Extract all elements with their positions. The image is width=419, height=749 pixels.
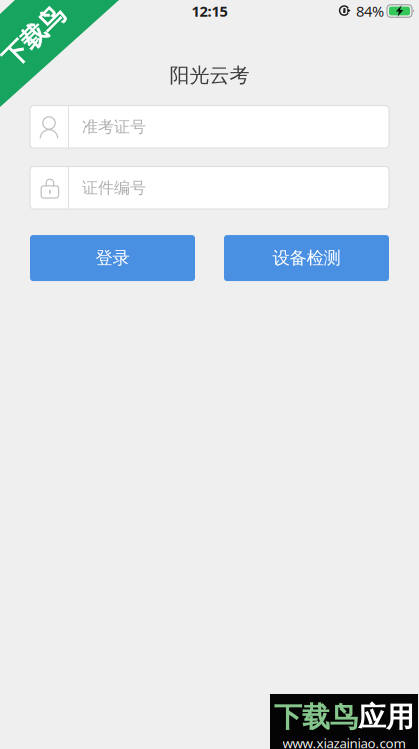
staticText: 准考证号: [82, 117, 146, 137]
staticText: 下载鸟: [0, 21, 71, 52]
staticText: 阳光云考: [169, 63, 249, 88]
button[interactable]: 准考证号: [30, 106, 389, 148]
button[interactable]: 证件编号: [30, 167, 389, 209]
staticText: 登录: [95, 247, 129, 269]
staticText: 应用: [358, 700, 414, 734]
button[interactable]: 登录: [30, 235, 195, 281]
staticText: 84%: [356, 1, 384, 21]
staticText: 12:15: [191, 1, 227, 21]
button[interactable]: 设备检测: [224, 235, 389, 281]
staticText: www.xiazainiao.com: [282, 734, 405, 749]
staticText: 设备检测: [272, 247, 340, 269]
staticText: 下载鸟: [274, 700, 358, 734]
staticText: 证件编号: [82, 178, 146, 198]
